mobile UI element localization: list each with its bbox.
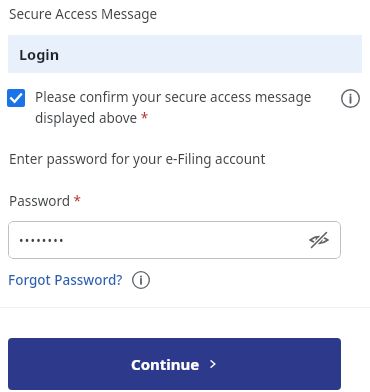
button[interactable]: •••••••• bbox=[8, 221, 341, 259]
staticText: •••••••• bbox=[19, 232, 307, 248]
staticText: Please confirm your secure access messag… bbox=[35, 88, 334, 127]
button[interactable]: Show password bbox=[307, 228, 331, 252]
staticText: Forgot Password? bbox=[8, 271, 123, 289]
staticText: Login bbox=[19, 44, 60, 64]
button[interactable]: Forgot Password? bbox=[8, 270, 150, 289]
staticText: Secure Access Message bbox=[9, 5, 158, 23]
other: Forgot password information bbox=[131, 270, 150, 289]
staticText: Enter password for your e-Filing account bbox=[9, 150, 266, 168]
staticText: Continue bbox=[131, 354, 200, 374]
button[interactable]: Please confirm your secure access messag… bbox=[7, 88, 360, 127]
button[interactable]: More information about secure access mes… bbox=[340, 88, 360, 108]
staticText: Password * bbox=[9, 192, 82, 210]
button[interactable]: Continue bbox=[8, 338, 341, 390]
